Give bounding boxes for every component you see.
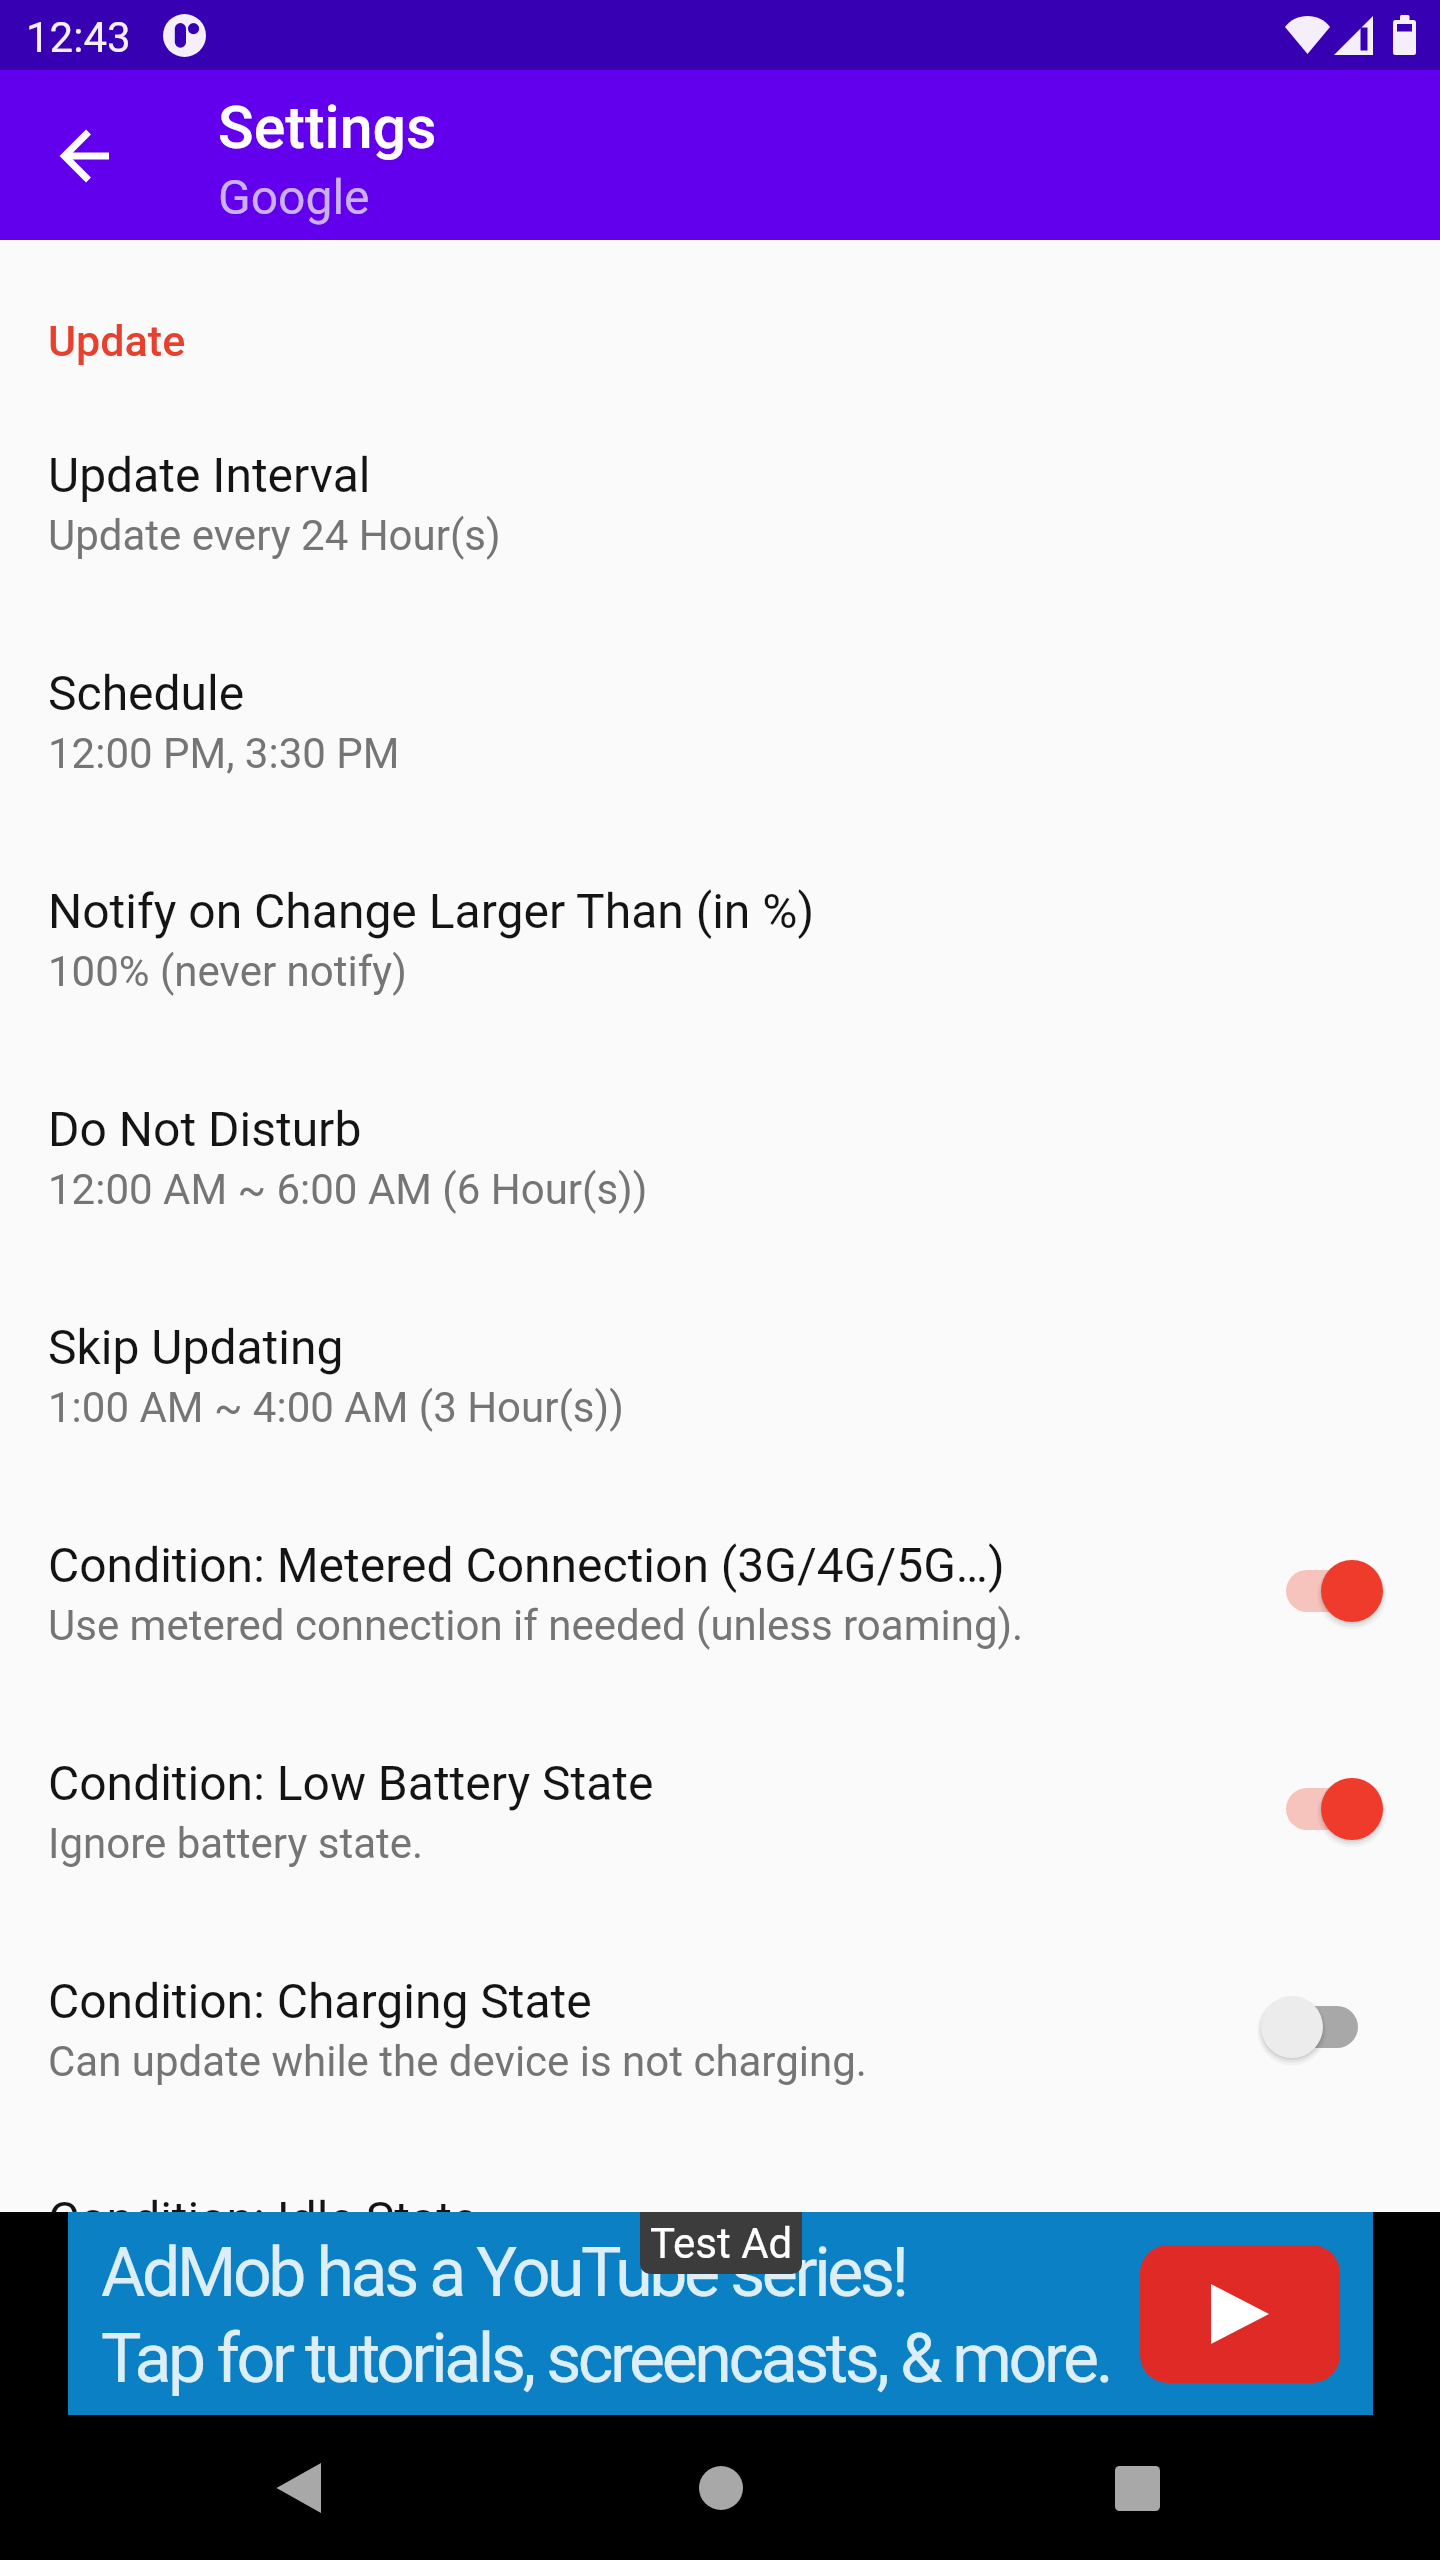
staticText: Google [218,169,370,225]
staticText: Update every 24 Hour(s) [48,511,501,560]
button[interactable]: Enabled [1250,1541,1400,1641]
button[interactable]: Condition: Metered Connection (3G/4G/5G…… [0,1502,1440,1720]
staticText: 12:00 AM ~ 6:00 AM (6 Hour(s)) [48,1165,648,1214]
staticText: Update Interval [48,447,371,503]
staticText: Notify on Change Larger Than (in %) [48,883,815,939]
staticText: Schedule [48,665,245,721]
staticText: Condition: Charging State [48,1973,592,2029]
staticText: Can update while the device is not charg… [48,2037,867,2086]
button[interactable]: Navigate up [31,100,143,212]
button[interactable]: Disabled [1250,1977,1400,2077]
staticText: 100% (never notify) [48,947,407,996]
button[interactable]: Home [649,2416,793,2560]
button[interactable]: Schedule [0,630,1440,848]
staticText: Condition: Metered Connection (3G/4G/5G…… [48,1537,1005,1593]
staticText: Condition: Idle State [48,2191,478,2247]
button[interactable]: Skip Updating [0,1284,1440,1502]
button[interactable]: Disabled [1250,2195,1400,2295]
button[interactable]: Condition: Charging State [0,1938,1440,2156]
staticText: Ignore battery state. [48,1819,424,1868]
staticText: 12:00 PM, 3:30 PM [48,729,400,778]
staticText: Test Ad [650,2219,793,2268]
staticText: 12:43 [26,13,131,62]
button[interactable]: Recent apps [1065,2416,1209,2560]
staticText: Tap for tutorials, screencasts, & more. [101,2319,1111,2399]
staticText: Do Not Disturb [48,1101,362,1157]
button[interactable]: Notify on Change Larger Than (in %) [0,848,1440,1066]
button[interactable]: Do Not Disturb [0,1066,1440,1284]
button[interactable]: Condition: Idle State [0,2156,1440,2374]
button[interactable]: Back [227,2416,371,2560]
button[interactable]: AdMob has a YouTube series! [68,2212,1373,2415]
staticText: Use metered connection if needed (unless… [48,1601,1024,1650]
button[interactable]: Update Interval [0,412,1440,630]
staticText: Condition: Low Battery State [48,1755,654,1811]
staticText: Skip Updating [48,1319,344,1375]
staticText: Update even when the device is idle. [48,2255,721,2304]
button[interactable]: Condition: Low Battery State [0,1720,1440,1938]
staticText: Update [48,316,186,366]
button[interactable]: Enabled [1250,1759,1400,1859]
staticText: AdMob has a YouTube series! [101,2233,906,2313]
staticText: Settings [218,93,437,162]
staticText: 1:00 AM ~ 4:00 AM (3 Hour(s)) [48,1383,624,1432]
button[interactable]: Update [48,316,186,366]
